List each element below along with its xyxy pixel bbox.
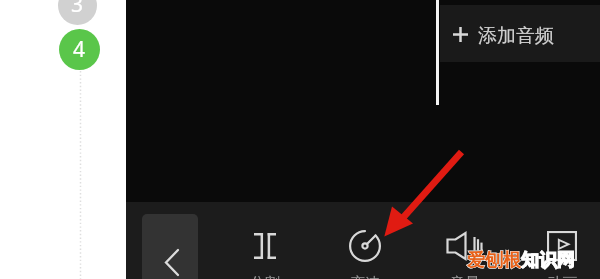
button[interactable]: 4 xyxy=(59,29,100,70)
button[interactable]: 动画 xyxy=(526,226,598,279)
staticText: 动画 xyxy=(547,274,577,279)
button[interactable]: 分割 xyxy=(229,226,301,279)
staticText: 爱刨根 xyxy=(467,249,521,272)
staticText: 音量 xyxy=(450,274,480,279)
staticText: 3 xyxy=(71,0,84,19)
staticText: 添加音频 xyxy=(478,24,554,48)
staticText: 分割 xyxy=(250,274,280,279)
staticText: 知识网 xyxy=(521,249,575,272)
button[interactable]: 音量 xyxy=(429,226,501,279)
staticText: 爱刨根 xyxy=(467,249,521,272)
staticText: 变速 xyxy=(350,274,380,279)
button[interactable]: Back xyxy=(142,214,198,279)
staticText: 知识网 xyxy=(521,249,575,272)
staticText: 4 xyxy=(73,35,86,64)
button[interactable]: 3 xyxy=(58,0,97,25)
button[interactable]: 变速 xyxy=(329,226,401,279)
button[interactable]: 添加音频 xyxy=(440,5,600,62)
